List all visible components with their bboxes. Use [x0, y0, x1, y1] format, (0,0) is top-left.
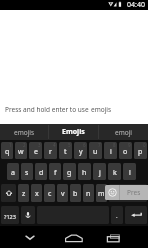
staticText: u — [93, 147, 98, 157]
other: Shift — [5, 189, 13, 197]
staticText: 7 — [98, 142, 101, 148]
button[interactable]: Recents — [91, 226, 135, 248]
button[interactable]: Backspace — [109, 184, 147, 202]
staticText: k — [113, 168, 117, 178]
staticText: Press and hold enter to use — [5, 105, 91, 114]
button[interactable]: 2 — [15, 142, 27, 159]
staticText: 8 — [113, 142, 116, 148]
staticText: i — [110, 147, 112, 157]
button[interactable]: 8 — [104, 142, 117, 159]
staticText: 3 — [38, 142, 41, 148]
staticText: z — [22, 189, 26, 199]
staticText: 4 — [53, 142, 56, 148]
other: Enter — [130, 211, 143, 219]
button[interactable]: Emojis — [49, 124, 98, 140]
button[interactable]: Voice input — [21, 206, 35, 224]
button[interactable]: Enter — [125, 206, 147, 224]
staticText: Emojis — [62, 127, 85, 137]
button[interactable]: l — [123, 163, 136, 180]
staticText: h — [82, 168, 87, 178]
button[interactable]: 9 — [119, 142, 132, 159]
button[interactable]: . — [111, 206, 123, 224]
button[interactable]: Home — [52, 226, 96, 248]
staticText: f — [54, 168, 57, 178]
staticText: n — [86, 189, 91, 199]
staticText: w — [18, 147, 24, 157]
button[interactable]: n — [83, 184, 94, 202]
button[interactable]: m — [96, 184, 107, 202]
button[interactable]: 3 — [29, 142, 42, 159]
button[interactable]: v — [57, 184, 68, 202]
staticText: a — [11, 168, 15, 178]
button[interactable]: k — [108, 163, 121, 180]
staticText: emojis — [91, 105, 112, 114]
staticText: m — [98, 189, 105, 199]
staticText: p — [138, 147, 143, 157]
button[interactable]: Back — [8, 226, 52, 248]
staticText: o — [123, 147, 128, 157]
staticText: t — [64, 147, 67, 157]
button[interactable]: f — [49, 163, 61, 180]
staticText: 04:40 — [127, 0, 145, 10]
button[interactable]: x — [31, 184, 42, 202]
staticText: q — [5, 147, 10, 157]
button[interactable]: h — [78, 163, 91, 180]
staticText: 0 — [143, 142, 146, 148]
staticText: x — [35, 189, 39, 199]
staticText: g — [67, 168, 72, 178]
staticText: 9 — [128, 142, 131, 148]
button[interactable]: 5 — [59, 142, 72, 159]
button[interactable]: 1 — [1, 142, 13, 159]
button[interactable]: g — [63, 163, 76, 180]
staticText: v — [61, 189, 65, 199]
button[interactable]: j — [93, 163, 106, 180]
button[interactable]: z — [18, 184, 29, 202]
other: Voice input — [24, 211, 32, 219]
button[interactable]: 4 — [44, 142, 57, 159]
staticText: j — [99, 168, 101, 178]
button[interactable]: Emoji — [105, 185, 148, 200]
button[interactable]: c — [44, 184, 55, 202]
button[interactable]: 0 — [134, 142, 147, 159]
button[interactable]: emojis — [0, 124, 48, 140]
button[interactable]: Shift — [1, 184, 16, 202]
staticText: 5 — [68, 142, 71, 148]
staticText: Pres — [127, 188, 141, 197]
other: Backspace — [123, 189, 134, 197]
staticText: ?123 — [4, 213, 16, 220]
staticText: . — [116, 212, 118, 220]
button[interactable]: 7 — [89, 142, 102, 159]
staticText: e — [34, 147, 38, 157]
staticText: d — [39, 168, 44, 178]
button[interactable]: a — [7, 163, 19, 180]
staticText: r — [49, 147, 52, 157]
staticText: b — [73, 189, 78, 199]
staticText: emojis — [14, 128, 35, 137]
other: Emoji — [108, 188, 117, 197]
button[interactable]: 6 — [74, 142, 87, 159]
staticText: 6 — [83, 142, 86, 148]
button[interactable]: d — [35, 163, 47, 180]
staticText: emoji — [115, 128, 133, 137]
staticText: l — [129, 168, 131, 178]
button[interactable]: s — [21, 163, 33, 180]
button[interactable]: b — [70, 184, 81, 202]
staticText: c — [48, 189, 52, 199]
staticText: y — [79, 147, 83, 157]
staticText: s — [25, 168, 29, 178]
button[interactable]: emoji — [99, 124, 148, 140]
staticText: 1 — [9, 142, 12, 148]
button[interactable]: ?123 — [1, 206, 19, 224]
staticText: 2 — [23, 142, 26, 148]
